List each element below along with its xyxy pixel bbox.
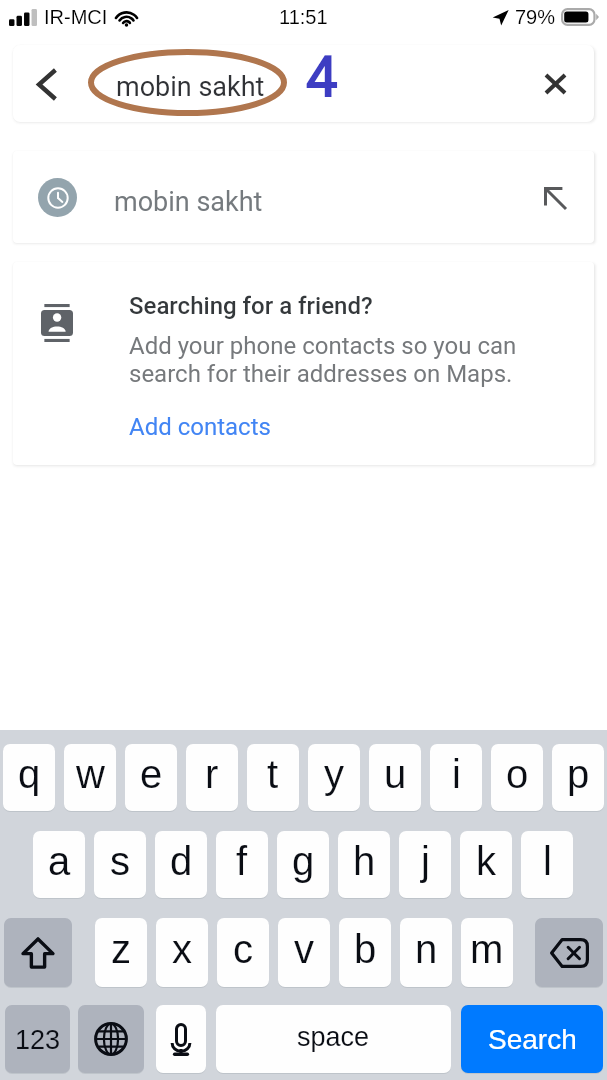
button[interactable]: d — [155, 831, 207, 898]
staticText: x — [172, 927, 192, 972]
button[interactable]: v — [278, 918, 330, 987]
staticText: b — [354, 927, 377, 972]
staticText: f — [236, 839, 248, 884]
button[interactable]: a — [33, 831, 85, 898]
staticText: c — [233, 927, 253, 972]
staticText: e — [140, 752, 163, 797]
staticText: Search — [488, 1024, 577, 1055]
staticText: t — [267, 752, 279, 797]
button[interactable]: Next keyboard — [78, 1005, 144, 1073]
staticText: q — [18, 752, 41, 797]
button[interactable]: e — [125, 744, 177, 811]
button[interactable]: Add contacts — [129, 413, 271, 441]
button[interactable]: Dictation — [156, 1005, 206, 1073]
button[interactable]: Backspace — [535, 918, 603, 987]
staticText: z — [111, 927, 131, 972]
staticText: g — [292, 839, 315, 884]
staticText: p — [567, 752, 590, 797]
staticText: n — [415, 927, 438, 972]
button[interactable]: s — [94, 831, 146, 898]
staticText: Searching for a friend? — [129, 292, 373, 320]
button[interactable]: k — [460, 831, 512, 898]
button[interactable]: space — [216, 1005, 451, 1073]
button[interactable]: o — [491, 744, 543, 811]
staticText: l — [543, 839, 552, 884]
staticText: j — [421, 839, 430, 884]
staticText: IR-MCI — [44, 6, 108, 28]
button[interactable]: g — [277, 831, 329, 898]
staticText: 79% — [515, 6, 556, 28]
staticText: y — [324, 752, 344, 797]
staticText: u — [384, 752, 407, 797]
button[interactable]: j — [399, 831, 451, 898]
button[interactable]: h — [338, 831, 390, 898]
staticText: v — [294, 927, 314, 972]
staticText: d — [170, 839, 193, 884]
staticText: a — [48, 839, 71, 884]
button[interactable]: w — [64, 744, 116, 811]
button[interactable]: y — [308, 744, 360, 811]
button[interactable]: 123 — [5, 1005, 70, 1073]
staticText: 11:51 — [279, 6, 328, 28]
staticText: i — [452, 752, 461, 797]
button[interactable]: p — [552, 744, 604, 811]
staticText: mobin sakht — [116, 71, 265, 103]
button[interactable]: r — [186, 744, 238, 811]
button[interactable]: mobin sakht — [13, 151, 594, 243]
button[interactable]: i — [430, 744, 482, 811]
staticText: k — [476, 839, 496, 884]
button[interactable]: m — [461, 918, 513, 987]
button[interactable]: Back — [13, 45, 594, 122]
button[interactable]: Shift — [4, 918, 72, 987]
staticText: s — [110, 839, 130, 884]
staticText: Add your phone contacts so you can searc… — [129, 332, 517, 388]
button[interactable]: Search — [461, 1005, 603, 1073]
button[interactable]: b — [339, 918, 391, 987]
button[interactable]: u — [369, 744, 421, 811]
staticText: 4 — [306, 45, 338, 110]
button[interactable]: Clear search — [534, 63, 576, 105]
staticText: h — [353, 839, 376, 884]
button[interactable]: l — [521, 831, 573, 898]
button[interactable]: z — [95, 918, 147, 987]
staticText: m — [470, 927, 504, 972]
button[interactable]: x — [156, 918, 208, 987]
button[interactable]: c — [217, 918, 269, 987]
button[interactable]: q — [3, 744, 55, 811]
button[interactable]: t — [247, 744, 299, 811]
button[interactable]: Use this search — [534, 177, 576, 219]
staticText: w — [76, 752, 105, 797]
button[interactable]: n — [400, 918, 452, 987]
staticText: space — [297, 1022, 370, 1052]
staticText: 123 — [15, 1025, 61, 1055]
staticText: r — [205, 752, 219, 797]
staticText: o — [506, 752, 529, 797]
button[interactable]: Back — [26, 63, 68, 105]
staticText: mobin sakht — [114, 186, 263, 218]
staticText: Add contacts — [129, 413, 271, 441]
button[interactable]: f — [216, 831, 268, 898]
